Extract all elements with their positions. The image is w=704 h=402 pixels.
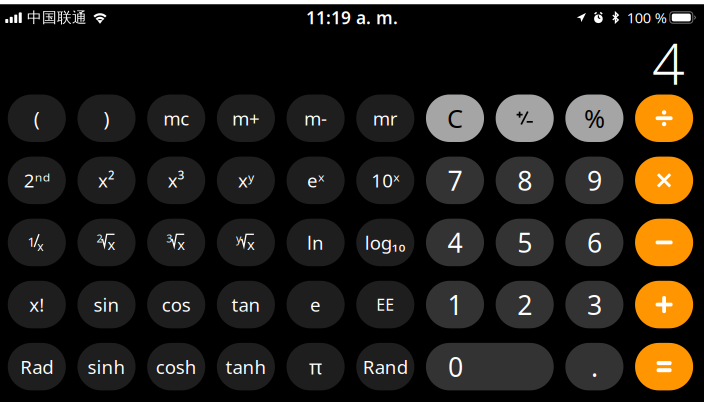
button[interactable]: x² — [77, 157, 136, 204]
button[interactable]: mc — [147, 94, 205, 142]
staticText: m+ — [232, 106, 260, 131]
button[interactable]: xʸ — [217, 157, 275, 204]
button[interactable]: eˣ — [287, 157, 345, 204]
button[interactable]: log₁₀ — [356, 219, 414, 266]
staticText: ln — [307, 230, 324, 255]
button[interactable]: C — [426, 94, 484, 142]
staticText: eˣ — [307, 168, 324, 193]
staticText: C — [447, 101, 463, 135]
button[interactable]: Multiply — [635, 157, 693, 204]
staticText: % — [584, 101, 605, 135]
button[interactable]: 3 — [565, 281, 623, 328]
staticText: 11:19 a. m. — [306, 6, 398, 29]
staticText: Rad — [20, 354, 53, 379]
staticText: 100 % — [627, 8, 667, 27]
staticText: x! — [29, 292, 44, 317]
staticText: 5 — [517, 225, 532, 260]
button[interactable]: cos — [147, 281, 205, 328]
button[interactable]: ( — [8, 94, 66, 142]
staticText: 中国联通 — [27, 8, 87, 26]
button[interactable]: ln — [287, 219, 345, 266]
button[interactable]: tan — [217, 281, 275, 328]
staticText: 4 — [447, 225, 462, 260]
button[interactable]: . — [565, 343, 623, 390]
staticText: m- — [304, 106, 327, 131]
button[interactable]: 8 — [496, 157, 554, 204]
button[interactable]: y-th root — [217, 219, 275, 266]
staticText: 2ⁿᵈ — [24, 168, 50, 193]
staticText: y — [236, 231, 241, 245]
staticText: Rand — [363, 354, 408, 379]
button[interactable]: Divide — [635, 94, 693, 142]
staticText: mc — [163, 106, 189, 131]
button[interactable]: sin — [77, 281, 136, 328]
staticText: 1 — [27, 233, 35, 250]
button[interactable]: Subtract — [635, 219, 693, 266]
button[interactable]: Square root — [77, 219, 136, 266]
staticText: 3 — [587, 287, 602, 322]
button[interactable]: 7 — [426, 157, 484, 204]
button[interactable]: sinh — [77, 343, 136, 390]
staticText: xʸ — [238, 168, 254, 193]
button[interactable]: Rand — [356, 343, 414, 390]
staticText: tanh — [225, 354, 266, 379]
button[interactable]: 0 — [426, 343, 554, 390]
staticText: 8 — [517, 163, 532, 198]
staticText: x² — [98, 168, 115, 193]
button[interactable]: e — [287, 281, 345, 328]
staticText: 4 — [652, 24, 685, 100]
staticText: 7 — [447, 163, 462, 198]
staticText: EE — [376, 294, 394, 315]
button[interactable]: 9 — [565, 157, 623, 204]
staticText: sin — [93, 292, 119, 317]
staticText: ) — [103, 105, 109, 132]
button[interactable]: 6 — [565, 219, 623, 266]
button[interactable]: % — [565, 94, 623, 142]
staticText: 9 — [587, 163, 602, 198]
staticText: e — [310, 292, 321, 317]
button[interactable]: Plus minus — [496, 94, 554, 142]
staticText: 3 — [166, 231, 172, 245]
staticText: ( — [34, 105, 40, 132]
button[interactable]: Add — [635, 281, 693, 328]
staticText: 2 — [96, 231, 102, 245]
button[interactable]: 1 — [426, 281, 484, 328]
button[interactable]: Rad — [8, 343, 66, 390]
button[interactable]: tanh — [217, 343, 275, 390]
button[interactable]: 10ˣ — [356, 157, 414, 204]
staticText: x — [107, 234, 115, 254]
staticText: 6 — [587, 225, 602, 260]
button[interactable]: cosh — [147, 343, 205, 390]
button[interactable]: x! — [8, 281, 66, 328]
button[interactable]: One over x — [8, 219, 66, 266]
staticText: 1 — [447, 287, 462, 322]
button[interactable]: π — [287, 343, 345, 390]
staticText: log₁₀ — [365, 230, 406, 255]
staticText: mr — [373, 106, 398, 131]
button[interactable]: EE — [356, 281, 414, 328]
button[interactable]: ) — [77, 94, 136, 142]
staticText: x — [247, 234, 255, 254]
staticText: x — [37, 238, 43, 254]
staticText: tan — [231, 292, 260, 317]
staticText: . — [591, 349, 598, 384]
staticText: 0 — [448, 349, 463, 384]
button[interactable]: 2 — [496, 281, 554, 328]
staticText: cosh — [156, 354, 197, 379]
staticText: 2 — [517, 287, 532, 322]
staticText: x³ — [168, 168, 185, 193]
button[interactable]: Cube root — [147, 219, 205, 266]
button[interactable]: 2ⁿᵈ — [8, 157, 66, 204]
button[interactable]: 4 — [426, 219, 484, 266]
button[interactable]: x³ — [147, 157, 205, 204]
staticText: π — [309, 353, 322, 380]
button[interactable]: 5 — [496, 219, 554, 266]
staticText: cos — [162, 292, 191, 317]
staticText: 10ˣ — [371, 168, 399, 193]
button[interactable]: m+ — [217, 94, 275, 142]
staticText: x — [177, 234, 185, 254]
button[interactable]: m- — [287, 94, 345, 142]
staticText: sinh — [87, 354, 125, 379]
button[interactable]: mr — [356, 94, 414, 142]
button[interactable]: Equals — [635, 343, 693, 390]
